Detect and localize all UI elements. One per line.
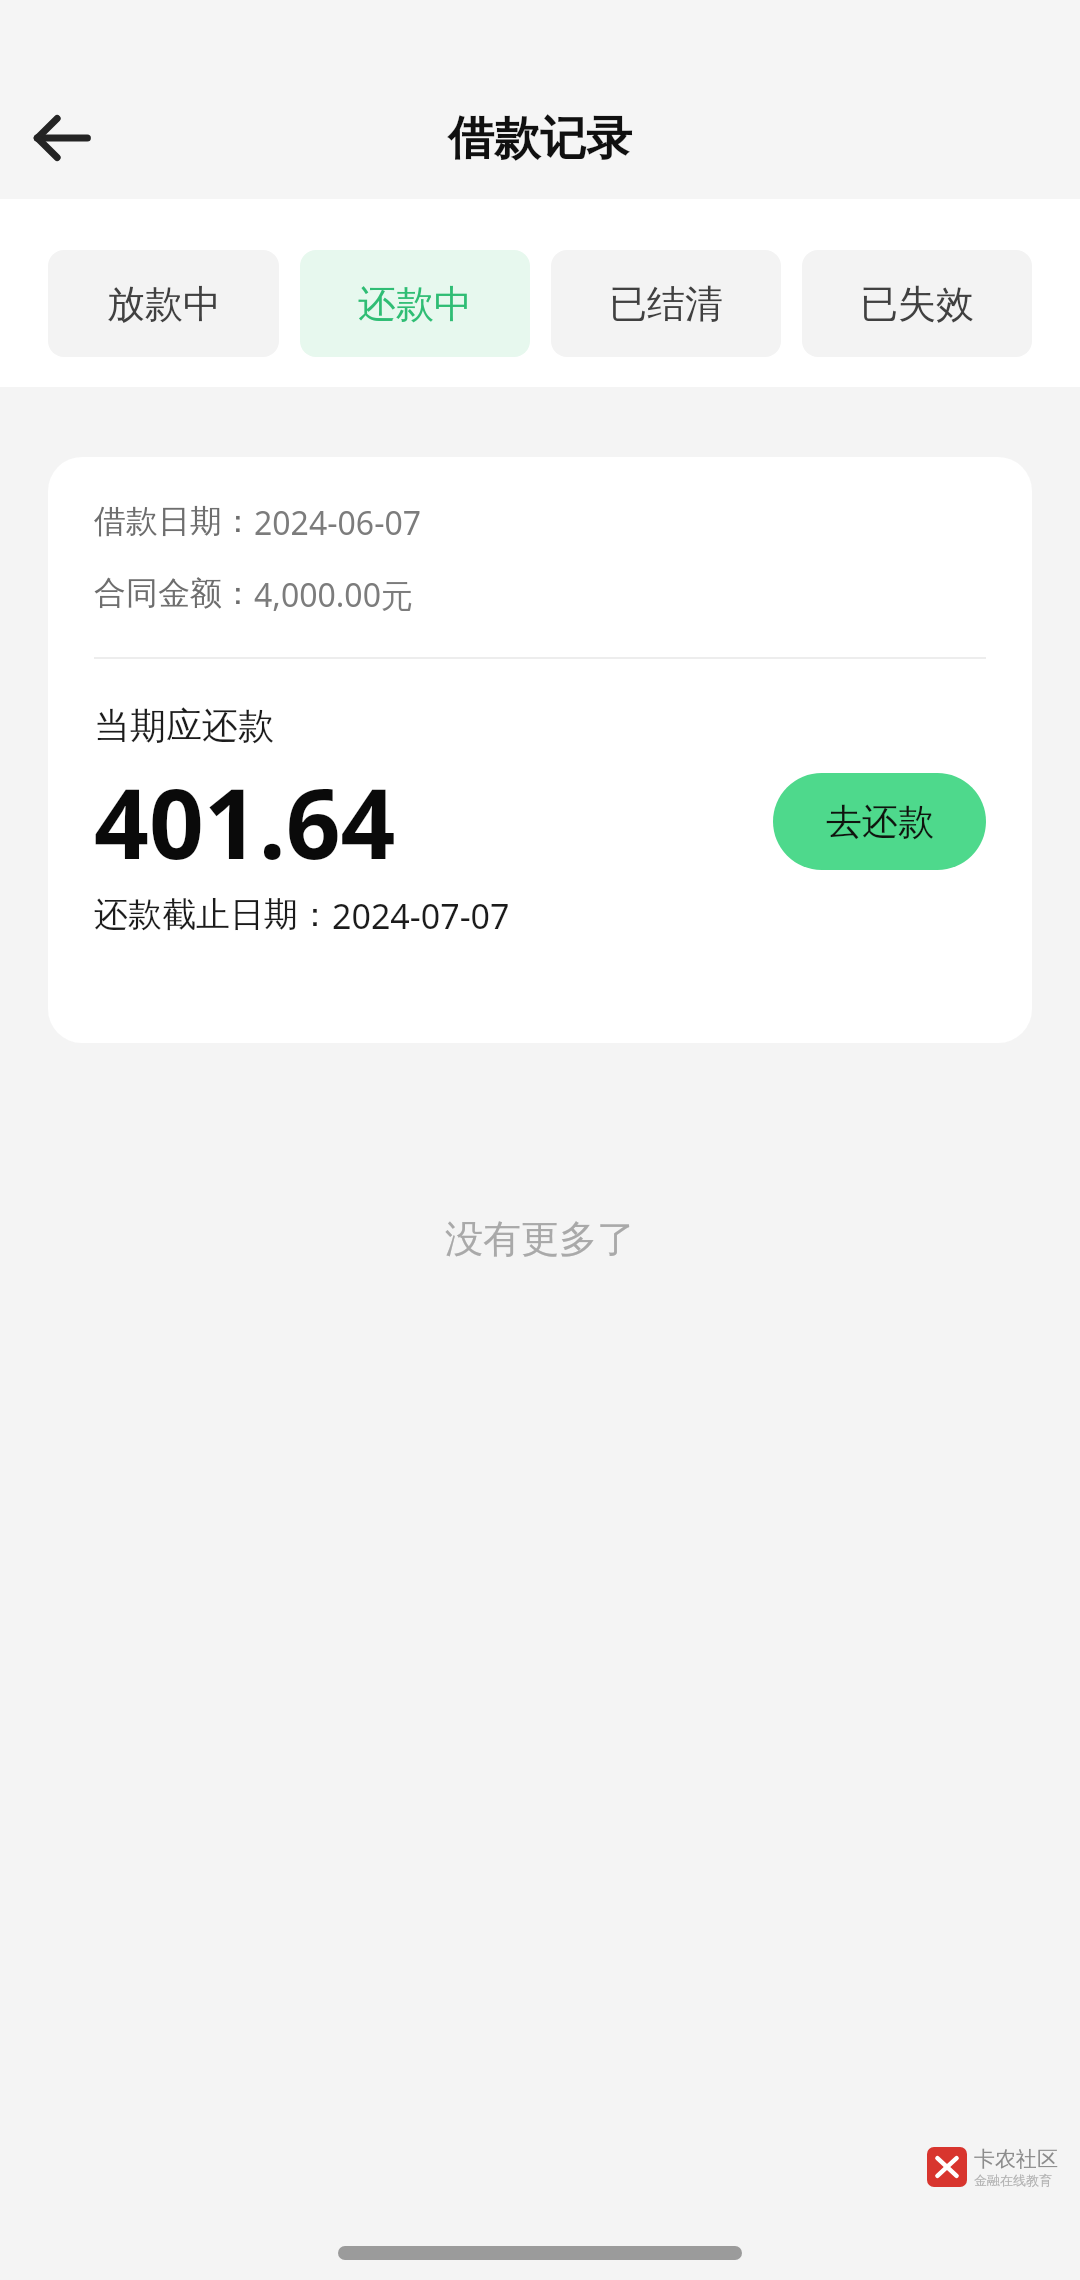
- button[interactable]: 借款日期：: [48, 457, 1032, 1043]
- button[interactable]: 已结清: [551, 250, 781, 357]
- button[interactable]: 放款中: [48, 250, 279, 357]
- staticText: 还款中: [358, 280, 472, 328]
- staticText: 2024-06-07: [254, 501, 422, 545]
- staticText: 金融在线教育: [974, 2172, 1052, 2188]
- button[interactable]: 还款中: [300, 250, 530, 357]
- staticText: 当期应还款: [94, 703, 274, 748]
- staticText: 去还款: [826, 799, 934, 844]
- staticText: 合同金额：: [94, 573, 254, 613]
- staticText: 借款日期：: [94, 501, 254, 541]
- staticText: 放款中: [107, 280, 221, 328]
- button[interactable]: 已失效: [802, 250, 1032, 357]
- staticText: 借款记录: [448, 110, 632, 168]
- staticText: 2024-07-07: [332, 893, 510, 939]
- button[interactable]: Back: [16, 92, 108, 184]
- staticText: 已失效: [860, 280, 974, 328]
- staticText: 已结清: [609, 280, 723, 328]
- staticText: 4,000.00元: [254, 573, 413, 617]
- staticText: 还款截止日期：: [94, 893, 332, 936]
- staticText: 没有更多了: [0, 1215, 1080, 1263]
- staticText: 401.64: [94, 756, 773, 887]
- staticText: 卡农社区: [974, 2146, 1058, 2172]
- button[interactable]: 去还款: [773, 773, 986, 870]
